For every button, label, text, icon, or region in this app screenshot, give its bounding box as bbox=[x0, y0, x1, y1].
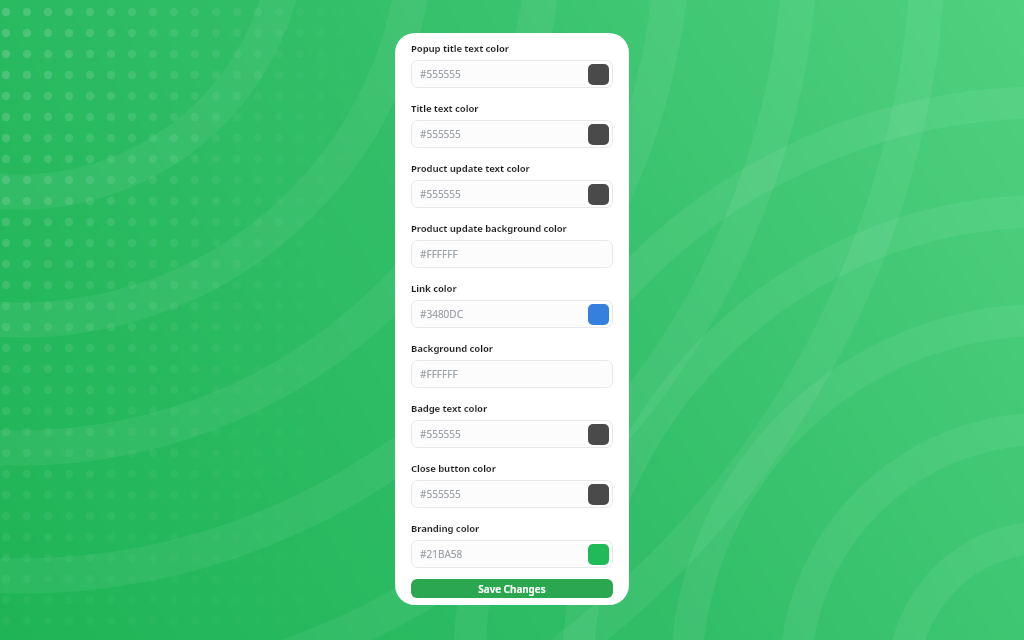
button[interactable]: Pick Link color bbox=[588, 304, 609, 325]
staticText: #21BA58 bbox=[420, 547, 463, 561]
staticText: #555555 bbox=[420, 67, 461, 81]
button[interactable]: #555555 bbox=[411, 60, 613, 88]
button[interactable]: #3480DC bbox=[411, 300, 613, 328]
button[interactable]: Pick Close button color bbox=[588, 484, 609, 505]
staticText: Close button color bbox=[411, 462, 496, 475]
staticText: Branding color bbox=[411, 522, 480, 535]
staticText: Save Changes bbox=[478, 582, 546, 596]
button[interactable]: #FFFFFF bbox=[411, 360, 613, 388]
staticText: Product update text color bbox=[411, 162, 530, 175]
staticText: Badge text color bbox=[411, 402, 488, 415]
button[interactable]: Pick Product update text color bbox=[588, 184, 609, 205]
button[interactable]: Pick Badge text color bbox=[588, 424, 609, 445]
button[interactable]: #555555 bbox=[411, 420, 613, 448]
button[interactable]: Save Changes bbox=[411, 579, 613, 598]
button[interactable]: #555555 bbox=[411, 120, 613, 148]
staticText: #555555 bbox=[420, 127, 461, 141]
button[interactable]: #555555 bbox=[411, 480, 613, 508]
button[interactable]: #555555 bbox=[411, 180, 613, 208]
staticText: #FFFFFF bbox=[420, 247, 458, 261]
staticText: Background color bbox=[411, 342, 493, 355]
button[interactable]: #FFFFFF bbox=[411, 240, 613, 268]
staticText: #555555 bbox=[420, 487, 461, 501]
staticText: #555555 bbox=[420, 427, 461, 441]
button[interactable]: Pick Popup title text color bbox=[588, 64, 609, 85]
button[interactable]: Pick Branding color bbox=[588, 544, 609, 565]
staticText: #555555 bbox=[420, 187, 461, 201]
staticText: Link color bbox=[411, 282, 457, 295]
staticText: #FFFFFF bbox=[420, 367, 458, 381]
staticText: Title text color bbox=[411, 102, 479, 115]
button[interactable]: #21BA58 bbox=[411, 540, 613, 568]
staticText: #3480DC bbox=[420, 307, 463, 321]
staticText: Popup title text color bbox=[411, 42, 509, 55]
staticText: Product update background color bbox=[411, 222, 567, 235]
button[interactable]: Pick Title text color bbox=[588, 124, 609, 145]
